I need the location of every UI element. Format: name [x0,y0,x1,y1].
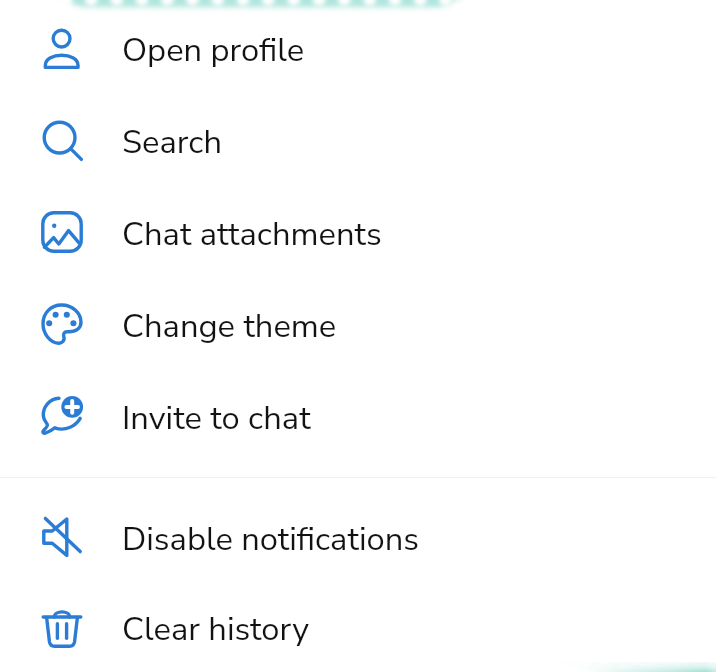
staticText: Change theme [122,304,337,349]
button[interactable]: Disable notifications [0,491,716,583]
button[interactable]: Clear history [0,583,716,672]
staticText: Open profile [122,28,305,73]
staticText: Disable notifications [122,517,419,562]
button[interactable]: Chat attachments [0,186,716,278]
staticText: Search [122,120,223,165]
button[interactable]: Change theme [0,278,716,370]
staticText: Clear history [122,607,309,652]
staticText: Invite to chat [122,396,311,441]
staticText: Chat attachments [122,212,382,257]
button[interactable]: Open profile [0,2,716,94]
button[interactable]: Search [0,94,716,186]
button[interactable]: Invite to chat [0,370,716,462]
